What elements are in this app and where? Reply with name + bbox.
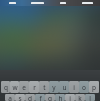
button[interactable]: Tab three [50, 0, 75, 6]
button[interactable]: r [29, 81, 39, 93]
button[interactable]: Tab four [75, 0, 100, 6]
button[interactable]: y [49, 81, 59, 93]
staticText: j [69, 94, 71, 101]
staticText: f [39, 94, 42, 101]
button[interactable]: u [59, 81, 69, 93]
button[interactable]: e [19, 81, 29, 93]
button[interactable]: o [79, 81, 89, 93]
staticText: a [8, 94, 12, 101]
button[interactable]: Tab two [25, 0, 50, 6]
button[interactable]: g [45, 94, 55, 101]
staticText: l [89, 94, 91, 101]
button[interactable]: h [55, 94, 65, 101]
staticText: e [22, 83, 26, 92]
staticText: w [12, 83, 18, 92]
staticText: g [48, 94, 52, 101]
button[interactable]: s [15, 94, 25, 101]
button[interactable]: j [65, 94, 75, 101]
staticText: s [18, 94, 22, 101]
button[interactable]: i [69, 81, 79, 93]
staticText: q [4, 83, 8, 92]
staticText: r [33, 83, 36, 92]
staticText: h [58, 94, 63, 101]
staticText: k [78, 94, 82, 101]
staticText: i [73, 83, 75, 92]
button[interactable]: a [5, 94, 15, 101]
button[interactable]: k [75, 94, 85, 101]
staticText: y [52, 83, 56, 92]
button[interactable]: d [25, 94, 35, 101]
button[interactable]: w [10, 81, 19, 93]
staticText: p [92, 83, 96, 92]
staticText: d [28, 94, 32, 101]
button[interactable]: f [35, 94, 45, 101]
button[interactable]: q [1, 81, 10, 93]
button[interactable]: l [85, 94, 95, 101]
staticText: o [82, 83, 86, 92]
button[interactable]: p [89, 81, 99, 93]
staticText: t [43, 83, 46, 92]
button[interactable]: t [39, 81, 49, 93]
button[interactable]: Tab one [0, 0, 25, 6]
staticText: u [62, 83, 67, 92]
